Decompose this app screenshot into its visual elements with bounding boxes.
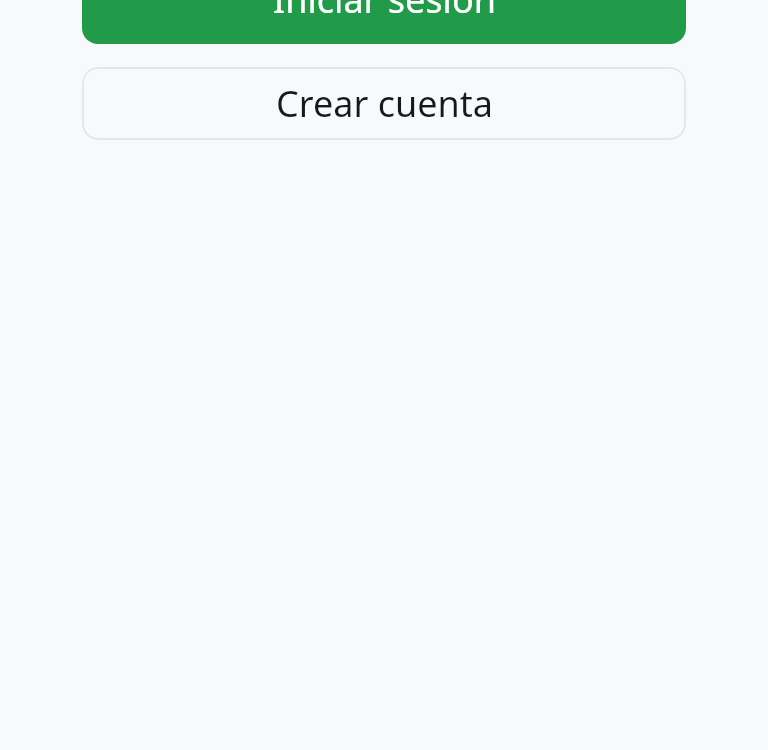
button[interactable]: Iniciar sesión bbox=[82, 0, 686, 44]
button[interactable]: Crear cuenta bbox=[82, 67, 686, 140]
staticText: Crear cuenta bbox=[276, 79, 493, 128]
staticText: Iniciar sesión bbox=[273, 0, 496, 24]
